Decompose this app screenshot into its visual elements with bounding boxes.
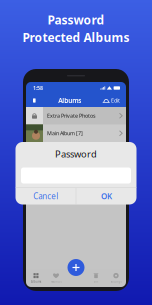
staticText: Extra Private Photos	[47, 112, 96, 119]
staticText: Settings	[110, 280, 121, 283]
button[interactable]: OK	[76, 188, 136, 204]
staticText: Cancel	[33, 191, 58, 201]
button[interactable]: Albums	[26, 270, 46, 286]
staticText: Albums	[31, 280, 41, 283]
button[interactable]: Cancel	[15, 188, 76, 204]
button[interactable]: Add album	[67, 259, 84, 276]
staticText: 1:58	[33, 84, 43, 92]
staticText: Password	[55, 148, 97, 160]
staticText: Password	[47, 12, 104, 28]
button[interactable]: Main Album [7]	[26, 124, 126, 142]
staticText: Albums	[58, 96, 81, 105]
staticText: Main Album [7]	[47, 130, 83, 137]
button[interactable]: Library	[30, 95, 39, 106]
staticText: OK	[101, 191, 112, 201]
staticText: Bin	[93, 280, 98, 283]
staticText: Protected Albums	[22, 29, 129, 45]
staticText: Edit	[111, 97, 120, 104]
button[interactable]: Bin	[86, 270, 106, 286]
button[interactable]: Favorites	[46, 270, 66, 286]
button[interactable]: Edit	[101, 95, 122, 106]
staticText: Favorites	[50, 280, 61, 283]
button[interactable]: Extra Private Photos	[26, 107, 126, 124]
button[interactable]: Settings	[106, 270, 126, 286]
